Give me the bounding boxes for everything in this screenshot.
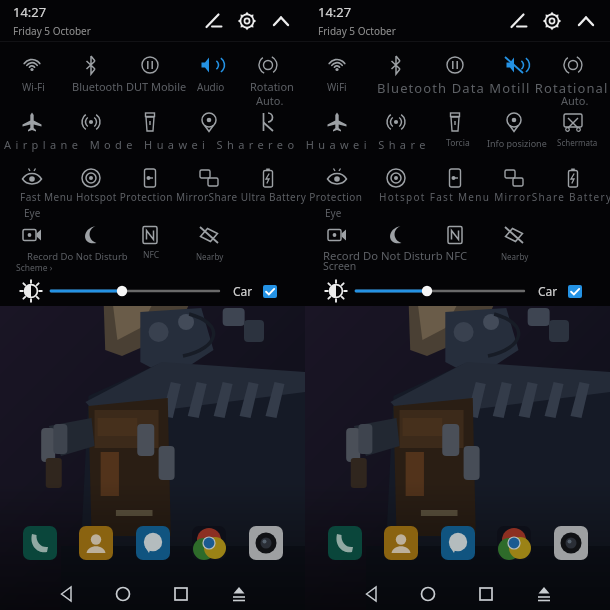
button[interactable]: Tile bbox=[126, 110, 174, 150]
button[interactable]: Tile bbox=[67, 53, 115, 93]
staticText: Bluetooth Data Motill Rotational bbox=[377, 79, 609, 97]
button[interactable]: Tile bbox=[8, 53, 56, 93]
button[interactable]: Tile bbox=[549, 53, 597, 93]
button[interactable]: Phone bbox=[23, 526, 57, 560]
button[interactable]: Tile bbox=[372, 110, 420, 150]
staticText: Info posizione bbox=[487, 137, 547, 149]
staticText: WiFi bbox=[327, 80, 347, 94]
button[interactable]: Tile bbox=[313, 53, 361, 93]
staticText: Fast Menu Hotspot Protection MirrorShare… bbox=[20, 190, 363, 204]
button[interactable]: Tile bbox=[372, 223, 420, 263]
button[interactable]: Tile bbox=[244, 110, 292, 150]
button[interactable]: Tile bbox=[431, 53, 479, 93]
button[interactable]: Tile bbox=[490, 223, 538, 263]
button[interactable]: Settings bbox=[539, 8, 565, 34]
staticText: Bluetooth DUT Mobile bbox=[72, 79, 187, 94]
staticText: Auto. bbox=[561, 93, 589, 108]
button[interactable]: Tile bbox=[126, 166, 174, 206]
staticText: Record Do Not Disturb NFC bbox=[323, 248, 468, 263]
button[interactable]: Tile bbox=[8, 223, 56, 263]
button[interactable]: Tile bbox=[185, 53, 233, 93]
button[interactable]: Car mode bbox=[568, 285, 582, 298]
button[interactable]: Tile bbox=[185, 166, 233, 206]
button[interactable]: Tile bbox=[67, 110, 115, 150]
staticText: Screen bbox=[323, 259, 357, 273]
button[interactable]: Chrome bbox=[497, 526, 531, 560]
button[interactable]: Tile bbox=[185, 110, 233, 150]
staticText: Friday 5 October bbox=[13, 24, 91, 38]
button[interactable]: Collapse bbox=[573, 8, 599, 34]
button[interactable]: Home bbox=[109, 580, 137, 608]
staticText: Friday 5 October bbox=[318, 24, 396, 38]
button[interactable]: Hide navigation bar bbox=[530, 580, 558, 608]
staticText: Car bbox=[233, 283, 253, 299]
button[interactable]: Edit bbox=[505, 8, 531, 34]
button[interactable]: Tile bbox=[67, 166, 115, 206]
button[interactable]: Recents bbox=[472, 580, 500, 608]
button[interactable]: Tile bbox=[490, 166, 538, 206]
button[interactable]: Car mode bbox=[263, 285, 277, 298]
button[interactable]: Edit bbox=[200, 8, 226, 34]
button[interactable]: Messages bbox=[136, 526, 170, 560]
button[interactable]: Tile bbox=[313, 223, 361, 263]
button[interactable]: Hide navigation bar bbox=[225, 580, 253, 608]
button[interactable]: Collapse bbox=[268, 8, 294, 34]
button[interactable]: Recents bbox=[167, 580, 195, 608]
button[interactable]: Home bbox=[414, 580, 442, 608]
button[interactable]: Tile bbox=[313, 110, 361, 150]
staticText: Audio bbox=[197, 80, 225, 94]
button[interactable]: Tile bbox=[67, 223, 115, 263]
button[interactable]: Tile bbox=[431, 223, 479, 263]
button[interactable]: Tile bbox=[490, 110, 538, 150]
staticText: NFC bbox=[143, 249, 160, 261]
button[interactable]: Back bbox=[53, 580, 81, 608]
staticText: Hotspot Fast Menu MirrorShare Battery Ul… bbox=[379, 190, 610, 204]
staticText: 14:27 bbox=[318, 3, 352, 21]
button[interactable]: Tile bbox=[372, 53, 420, 93]
staticText: Nearby bbox=[501, 251, 529, 262]
button[interactable]: Tile bbox=[8, 110, 56, 150]
button[interactable]: Tile bbox=[126, 53, 174, 93]
staticText: Airplane Mode Huawei Sharereo Huawei Sha… bbox=[4, 137, 430, 152]
button[interactable]: Back bbox=[358, 580, 386, 608]
button[interactable]: Tile bbox=[431, 166, 479, 206]
button[interactable]: Contacts bbox=[384, 526, 418, 560]
button[interactable]: Tile bbox=[372, 166, 420, 206]
button[interactable]: Tile bbox=[244, 53, 292, 93]
button[interactable]: Tile bbox=[126, 223, 174, 263]
staticText: Rotation bbox=[250, 79, 294, 94]
button[interactable]: Tile bbox=[244, 166, 292, 206]
staticText: Nearby bbox=[196, 251, 224, 262]
button[interactable]: Tile bbox=[313, 166, 361, 206]
button[interactable]: Camera bbox=[554, 526, 588, 560]
staticText: 14:27 bbox=[13, 3, 47, 21]
button[interactable]: Phone bbox=[328, 526, 362, 560]
button[interactable]: Tile bbox=[185, 223, 233, 263]
staticText: Torcia bbox=[446, 137, 470, 149]
staticText: Record Do Not Disturb bbox=[27, 250, 128, 263]
staticText: Car bbox=[538, 283, 558, 299]
button[interactable]: Settings bbox=[234, 8, 260, 34]
button[interactable]: Messages bbox=[441, 526, 475, 560]
button[interactable]: Tile bbox=[549, 110, 597, 150]
button[interactable]: Chrome bbox=[192, 526, 226, 560]
button[interactable]: Tile bbox=[431, 110, 479, 150]
button[interactable]: Tile bbox=[549, 166, 597, 206]
staticText: Eye bbox=[24, 206, 41, 220]
staticText: Eye bbox=[325, 206, 342, 220]
button[interactable]: Camera bbox=[249, 526, 283, 560]
staticText: Schermata bbox=[557, 137, 598, 148]
button[interactable]: Contacts bbox=[79, 526, 113, 560]
staticText: Auto. bbox=[256, 93, 284, 108]
button[interactable]: Tile bbox=[490, 53, 538, 93]
staticText: Scheme › bbox=[16, 262, 53, 274]
button[interactable]: Tile bbox=[8, 166, 56, 206]
staticText: Wi-Fi bbox=[22, 80, 45, 94]
